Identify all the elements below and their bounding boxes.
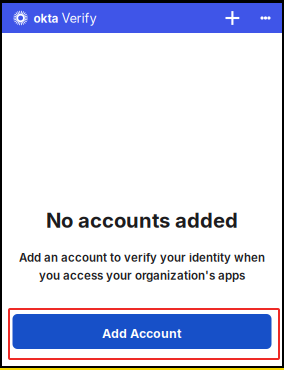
staticText: Add Account <box>102 326 182 341</box>
staticText: Add an account to verify your identity w… <box>19 250 265 264</box>
staticText: No accounts added <box>46 208 238 232</box>
staticText: Verify <box>62 10 97 26</box>
button[interactable]: Add account <box>218 4 246 32</box>
staticText: you access your organization's apps <box>39 268 245 282</box>
staticText: okta <box>33 11 58 25</box>
button[interactable]: Add Account <box>12 314 271 349</box>
button[interactable]: More options <box>251 4 279 32</box>
